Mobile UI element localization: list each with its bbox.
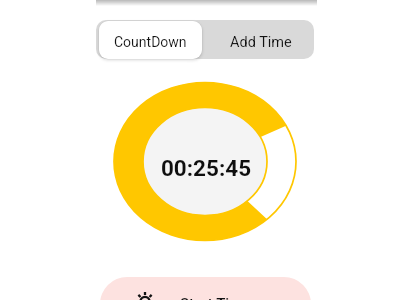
staticText: Start Timer	[180, 295, 256, 300]
staticText: 00:25:45	[156, 155, 256, 181]
staticText: CountDown	[114, 34, 187, 50]
button[interactable]: Add Time	[202, 20, 314, 59]
button[interactable]	[96, 20, 202, 59]
button[interactable]: CountDown	[99, 21, 202, 59]
button[interactable]: Start timer	[100, 277, 311, 300]
other: Start timer	[124, 277, 166, 300]
staticText: Add Time	[230, 34, 292, 51]
